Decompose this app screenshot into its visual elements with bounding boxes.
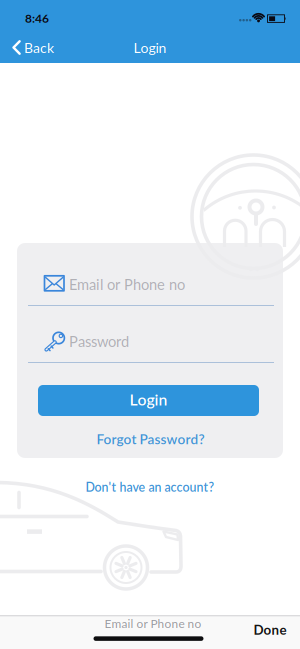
button[interactable]: Login — [38, 385, 259, 416]
button[interactable]: Password — [28, 322, 274, 364]
staticText: Login — [129, 390, 167, 409]
staticText: 8:46 — [25, 11, 49, 25]
button[interactable]: Email or Phone no — [28, 265, 274, 307]
staticText: Password — [69, 332, 129, 350]
staticText: Done — [253, 621, 286, 637]
staticText: Email or Phone no — [104, 616, 201, 631]
staticText: Login — [133, 39, 166, 56]
staticText: Don't have an account? — [85, 480, 214, 494]
staticText: Back — [24, 39, 54, 56]
button[interactable]: Back — [3, 32, 63, 62]
staticText: Email or Phone no — [69, 275, 185, 293]
button[interactable]: Forgot Password? — [85, 427, 215, 451]
button[interactable]: Done — [242, 616, 298, 642]
button[interactable]: Don't have an account? — [76, 475, 224, 499]
staticText: Forgot Password? — [96, 431, 204, 447]
